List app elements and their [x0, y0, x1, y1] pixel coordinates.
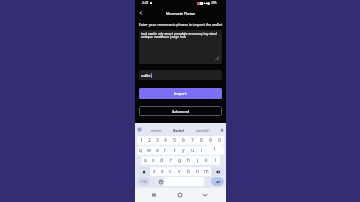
staticText: l — [215, 157, 217, 164]
button[interactable]: Shift — [137, 167, 150, 176]
staticText: 4:32 — [142, 1, 149, 5]
staticText: x — [161, 168, 164, 175]
button[interactable]: g — [175, 156, 184, 165]
button[interactable]: 4 — [161, 136, 170, 145]
staticText: Import — [174, 91, 187, 96]
staticText: l — [214, 145, 216, 153]
staticText: . — [207, 179, 208, 184]
button[interactable]: o — [206, 146, 215, 155]
button[interactable]: Home — [175, 190, 184, 199]
button[interactable]: 8 — [197, 136, 206, 145]
button[interactable]: Clipboard — [137, 127, 142, 132]
button[interactable]: 6 — [179, 136, 188, 145]
button[interactable]: a — [141, 156, 149, 165]
staticText: c — [169, 168, 172, 175]
staticText: 6 — [182, 137, 185, 144]
button[interactable]: Comma — [150, 177, 157, 186]
button[interactable]: Hide keyboard — [200, 190, 209, 199]
button[interactable]: wallet — [139, 70, 222, 80]
staticText: tool exotic rely enact mandate economy t… — [141, 31, 221, 39]
staticText: m — [204, 168, 209, 175]
button[interactable]: ?123 — [137, 177, 150, 186]
staticText: h — [187, 157, 191, 164]
staticText: y — [182, 147, 185, 154]
staticText: s — [152, 157, 155, 164]
staticText: 9 — [209, 137, 212, 144]
button[interactable]: Enter — [211, 177, 224, 186]
button[interactable]: i — [197, 146, 206, 155]
button[interactable]: j — [193, 156, 202, 165]
button[interactable]: 1 — [137, 136, 145, 145]
button[interactable]: Recents — [149, 190, 158, 199]
staticText: nashel01 — [196, 128, 210, 132]
button[interactable]: d — [157, 156, 166, 165]
button[interactable]: u — [188, 146, 197, 155]
button[interactable]: nashel01 — [196, 128, 210, 132]
staticText: u — [191, 147, 195, 154]
staticText: flashel — [173, 128, 185, 132]
staticText: t — [174, 147, 176, 154]
button[interactable]: x — [158, 167, 166, 176]
staticText: 5 — [173, 137, 176, 144]
button[interactable]: 3 — [153, 136, 161, 145]
staticText: w — [147, 147, 151, 154]
staticText: ?123 — [141, 180, 147, 184]
button[interactable]: 5 — [170, 136, 179, 145]
button[interactable]: h — [184, 156, 193, 165]
staticText: 39% — [211, 1, 217, 5]
staticText: wallet — [141, 73, 151, 78]
button[interactable]: q — [137, 146, 145, 155]
button[interactable]: r — [161, 146, 170, 155]
button[interactable]: t — [170, 146, 179, 155]
button[interactable]: w — [145, 146, 153, 155]
button[interactable]: m — [202, 167, 211, 176]
button[interactable]: Back — [137, 9, 145, 17]
button[interactable]: tool exotic rely enact mandate economy t… — [139, 30, 222, 64]
button[interactable]: 2 — [145, 136, 153, 145]
button[interactable]: Import — [139, 88, 222, 99]
button[interactable]: Advanced — [139, 106, 222, 116]
button[interactable]: flashel — [173, 128, 185, 132]
staticText: 0 — [218, 137, 221, 144]
button[interactable]: 7 — [188, 136, 197, 145]
button[interactable]: n — [193, 167, 202, 176]
staticText: 3 — [156, 137, 159, 144]
button[interactable]: y — [179, 146, 188, 155]
staticText: 7 — [191, 137, 194, 144]
button[interactable]: l — [211, 156, 220, 165]
staticText: nasher — [151, 128, 162, 132]
button[interactable]: nasher — [151, 128, 162, 132]
button[interactable]: 9 — [206, 136, 215, 145]
button[interactable]: Backspace — [211, 167, 224, 176]
button[interactable]: v — [175, 167, 184, 176]
staticText: 1 — [140, 137, 143, 144]
staticText: d — [160, 157, 164, 164]
staticText: b — [187, 168, 191, 175]
staticText: k — [205, 157, 208, 164]
button[interactable]: k — [202, 156, 211, 165]
button[interactable]: b — [184, 167, 193, 176]
button[interactable]: c — [166, 167, 175, 176]
staticText: a — [144, 157, 147, 164]
button[interactable]: f — [166, 156, 175, 165]
staticText: q — [139, 147, 143, 154]
staticText: j — [197, 157, 199, 164]
button[interactable]: z — [150, 167, 158, 176]
button[interactable]: s — [149, 156, 157, 165]
staticText: n — [196, 168, 200, 175]
staticText: Mnemonic Phrase — [166, 11, 196, 16]
staticText: v — [178, 168, 181, 175]
button[interactable]: 0 — [215, 136, 224, 145]
staticText: Enter your mnemonic phrase to import the… — [137, 22, 224, 27]
staticText: f — [170, 157, 172, 164]
button[interactable]: e — [153, 146, 161, 155]
button[interactable]: Emoji — [157, 177, 164, 186]
staticText: i — [201, 147, 203, 154]
staticText: z — [153, 168, 156, 175]
staticText: 8 — [200, 137, 203, 144]
button[interactable]: Voice input — [219, 127, 224, 132]
